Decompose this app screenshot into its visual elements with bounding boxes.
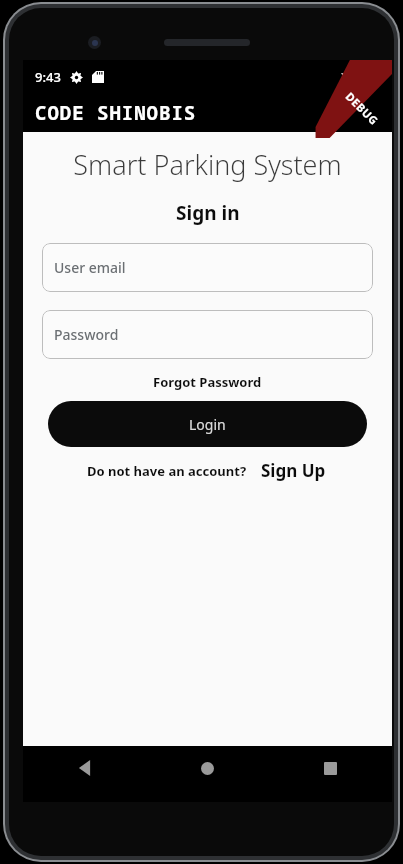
staticText: Login	[189, 415, 226, 434]
button[interactable]: Forgot Password	[147, 371, 268, 393]
button[interactable]: Home	[146, 746, 269, 790]
staticText: DEBUG	[343, 89, 382, 128]
button[interactable]: User email	[42, 243, 373, 292]
staticText: Do not have an account?	[87, 462, 247, 480]
staticText: Smart Parking System	[73, 146, 342, 183]
button[interactable]: Back	[23, 746, 146, 790]
button[interactable]: Login	[48, 401, 367, 447]
button[interactable]: Recent apps	[269, 746, 392, 790]
staticText: 9:43	[35, 68, 61, 86]
staticText: CODE SHINOBIS	[35, 100, 197, 126]
staticText: Sign in	[176, 200, 240, 226]
staticText: User email	[54, 258, 126, 277]
staticText: Password	[54, 325, 119, 344]
button[interactable]: Sign Up	[258, 457, 329, 484]
button[interactable]: Password	[42, 310, 373, 359]
